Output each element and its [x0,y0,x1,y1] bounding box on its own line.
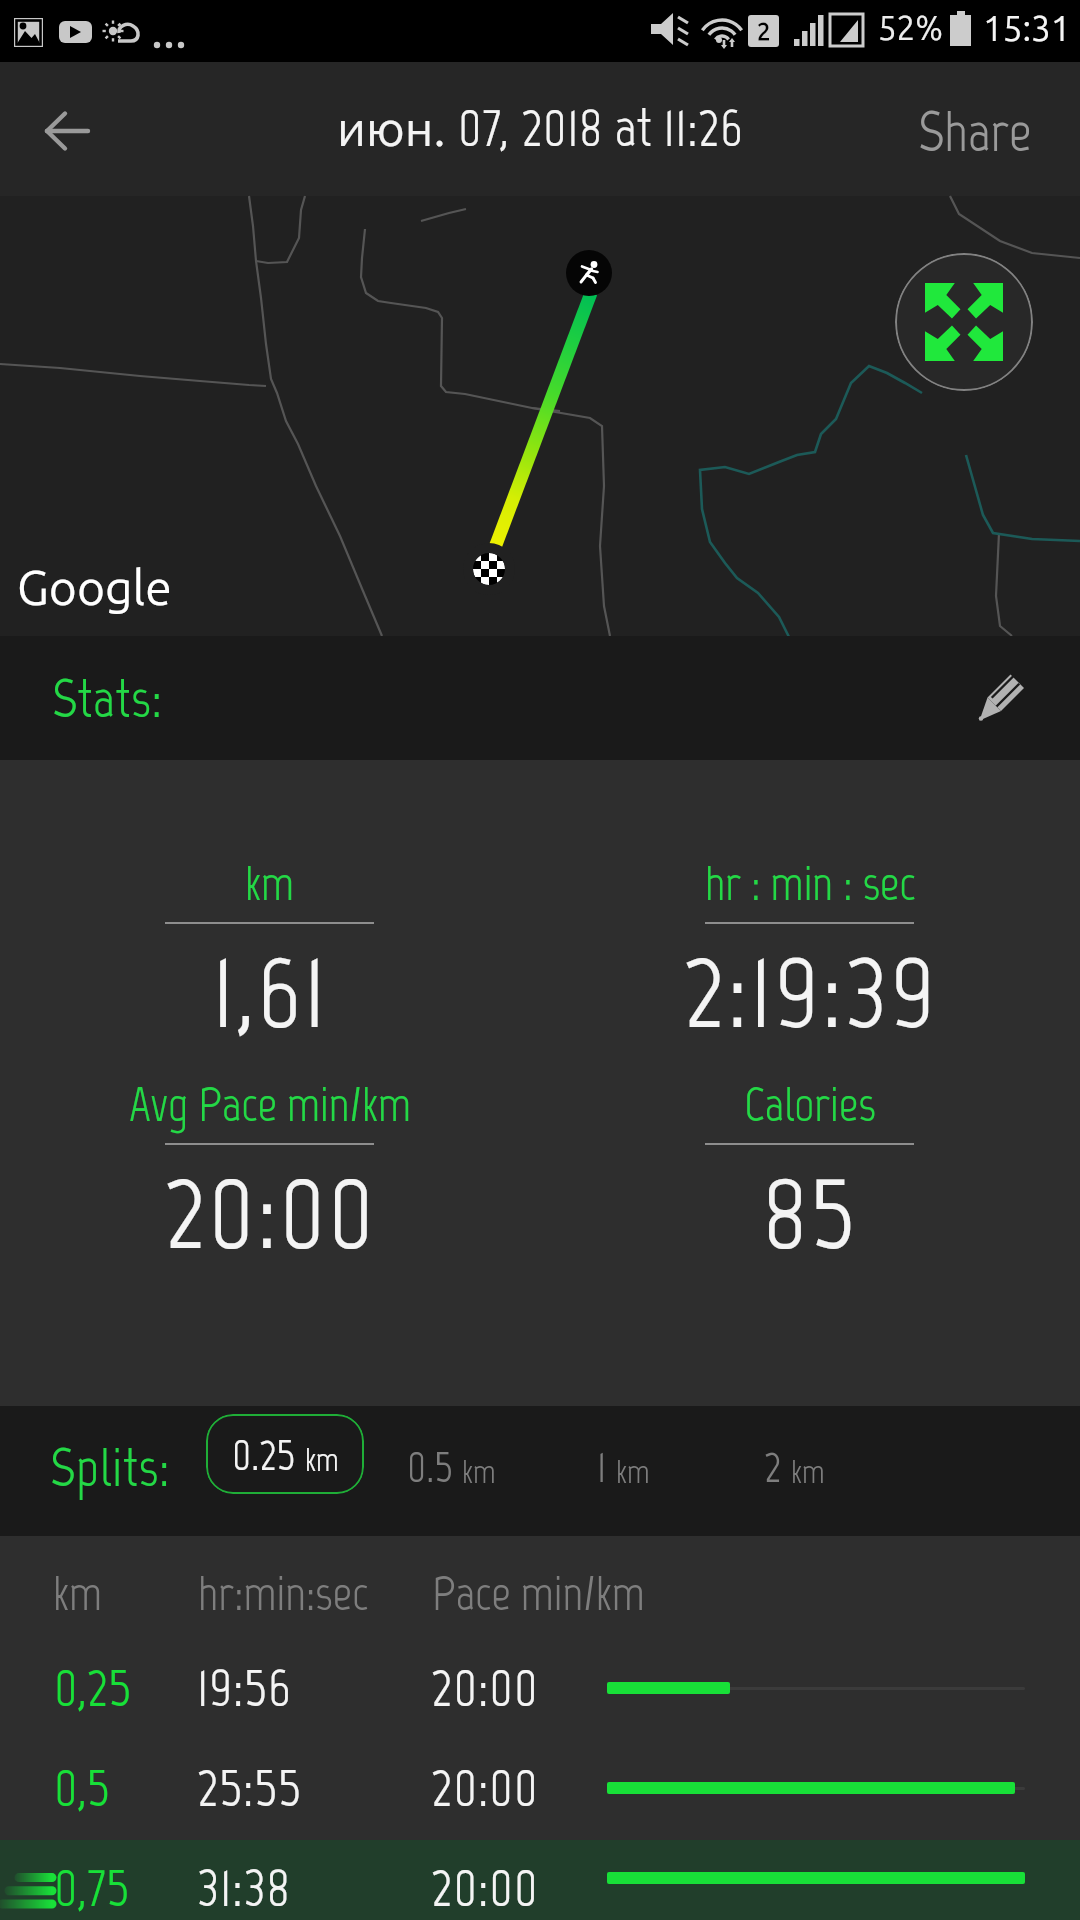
staticText: km [616,1452,650,1492]
button[interactable]: Back [0,62,132,196]
staticText: Avg Pace min/km [129,1075,412,1133]
staticText: Calories [744,1075,876,1133]
staticText: 20:00 [164,1147,377,1275]
staticText: 2:19:39 [683,926,938,1054]
staticText: km [462,1452,496,1492]
staticText: 0,75 [54,1855,130,1920]
staticText: km [305,1440,339,1480]
staticText: Google [17,560,172,614]
staticText: 19:56 [197,1655,292,1720]
button[interactable]: Edit [920,636,1080,760]
staticText: Splits: [50,1435,171,1500]
staticText: 20:00 [431,1855,539,1920]
staticText: 1 [597,1440,607,1493]
staticText: Pace min/km [432,1564,645,1622]
staticText: Share [918,98,1032,166]
staticText: hr : min : sec [705,854,916,912]
staticText: 20:00 [431,1655,539,1720]
staticText: 2 [764,1440,782,1493]
button[interactable]: 0,25 [0,1640,1080,1740]
staticText: 15:31 [983,8,1071,47]
button[interactable]: 1 [593,1426,654,1507]
button[interactable]: 0,75 [0,1840,1080,1920]
staticText: 20:00 [431,1755,539,1820]
staticText: Stats: [52,666,163,731]
button[interactable]: 0.5 [403,1426,500,1507]
staticText: 07, 2018 at 11:26 [458,95,744,160]
staticText: 2 [757,18,771,45]
staticText: 31:38 [197,1855,291,1920]
button[interactable]: Share [882,62,1080,196]
staticText: 52% [878,9,943,46]
staticText: km [245,854,295,912]
button[interactable]: Expand map [895,253,1033,391]
staticText: июн. [337,100,446,155]
staticText: km [791,1452,825,1492]
button[interactable]: 0,5 [0,1740,1080,1840]
staticText: 0.5 [407,1440,453,1493]
staticText: 85 [762,1147,858,1275]
staticText: 0,5 [54,1755,110,1820]
button[interactable]: 0.25 [206,1414,364,1494]
staticText: km [53,1564,103,1622]
staticText: 1,61 [212,926,328,1054]
button[interactable]: 2 [760,1426,829,1507]
staticText: 0.25 [232,1428,296,1481]
staticText: 25:55 [197,1755,302,1820]
staticText: hr:min:sec [198,1564,369,1622]
staticText: 0,25 [54,1655,132,1720]
